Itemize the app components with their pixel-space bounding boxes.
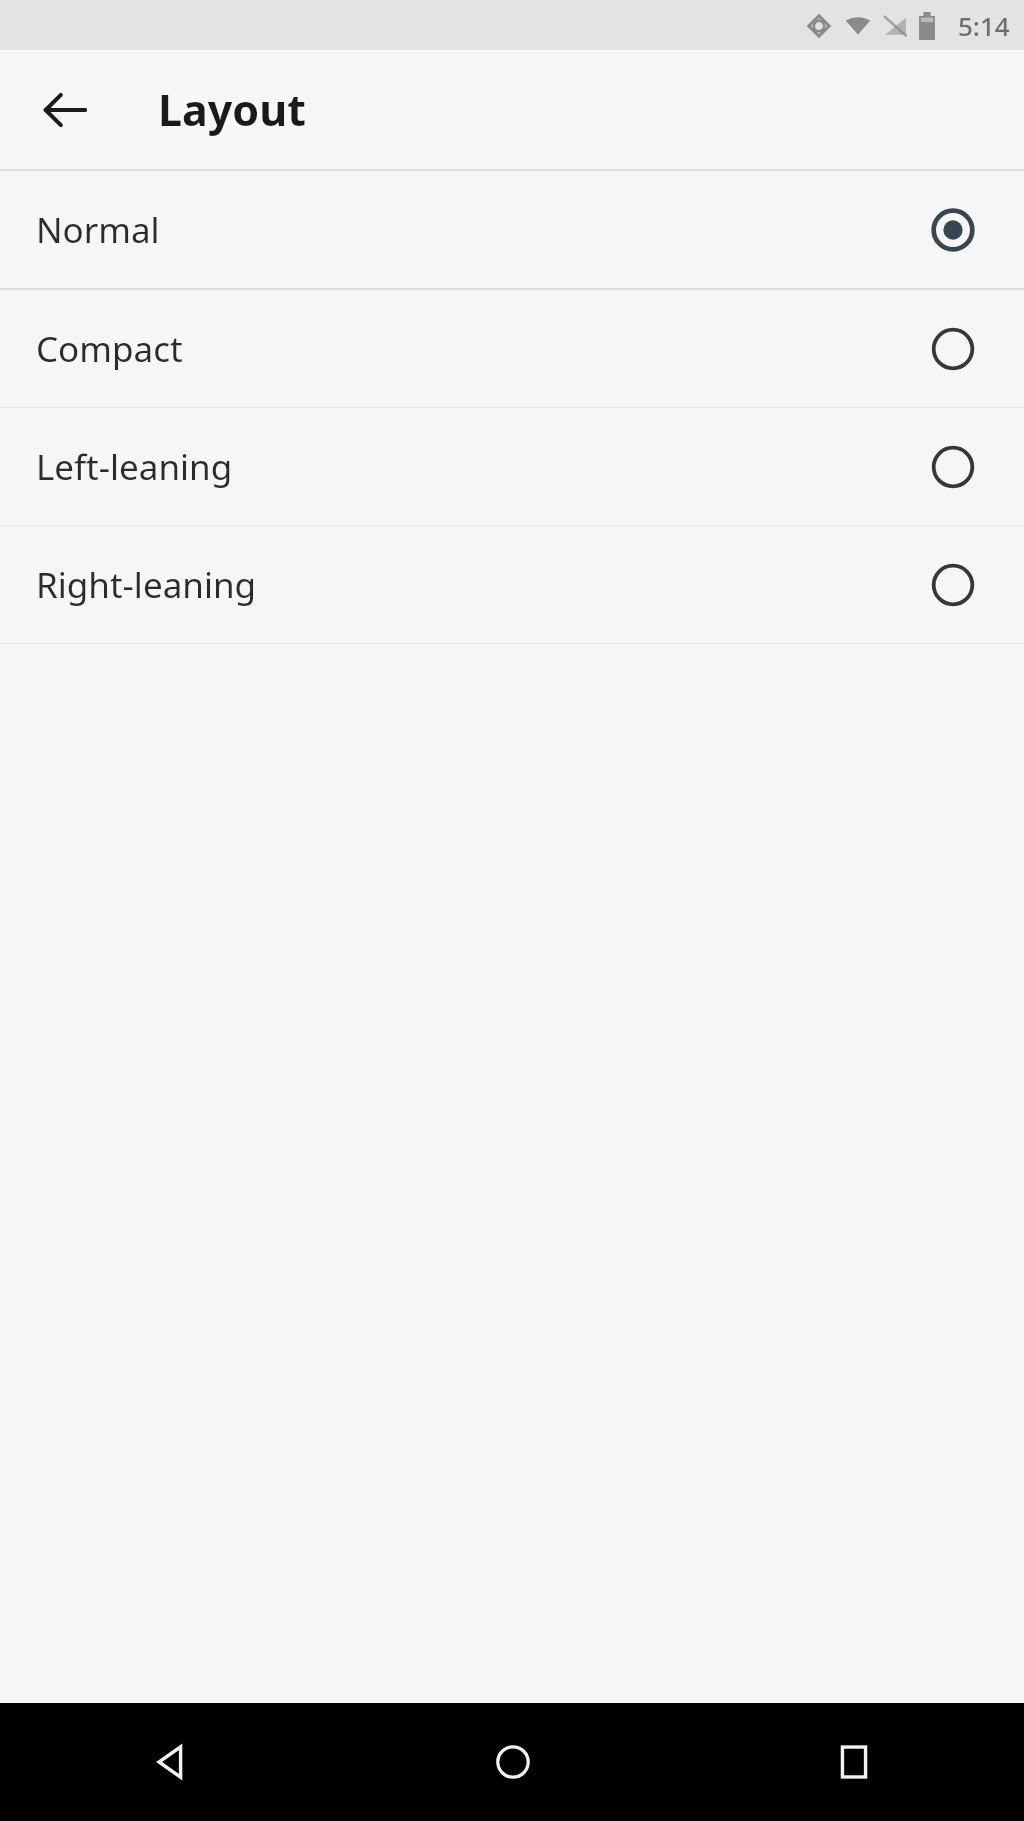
button[interactable]: Right-leaning <box>0 526 1024 643</box>
button[interactable]: Compact <box>0 290 1024 407</box>
button[interactable]: Back <box>22 67 108 153</box>
staticText: 5:14 <box>958 8 1010 43</box>
button[interactable]: Home <box>342 1703 683 1821</box>
staticText: Left-leaning <box>36 443 930 491</box>
staticText: Normal <box>36 206 930 254</box>
button[interactable]: Back <box>0 1703 342 1821</box>
staticText: Compact <box>36 325 930 373</box>
button[interactable]: Left-leaning <box>0 408 1024 525</box>
staticText: Layout <box>158 80 306 139</box>
button[interactable]: Normal <box>0 171 1024 288</box>
staticText: Right-leaning <box>36 561 930 609</box>
button[interactable]: Recent apps <box>683 1703 1024 1821</box>
